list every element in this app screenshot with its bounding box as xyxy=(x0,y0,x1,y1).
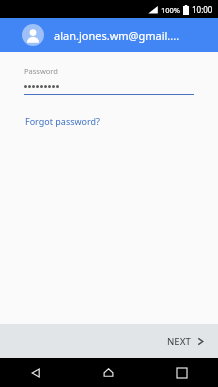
button[interactable]: alan.jones.wm@gmail.... xyxy=(22,24,208,46)
staticText: Password xyxy=(24,66,58,76)
staticText: 10:00 xyxy=(192,4,213,15)
staticText: Forgot password? xyxy=(25,115,101,127)
staticText: 100% xyxy=(161,5,181,15)
button[interactable]: Recent apps xyxy=(145,358,218,387)
staticText: alan.jones.wm@gmail.... xyxy=(54,28,180,43)
button[interactable]: Password xyxy=(24,66,194,95)
button[interactable]: NEXT xyxy=(153,328,218,355)
button[interactable]: Forgot password? xyxy=(24,113,102,129)
button[interactable]: Home xyxy=(72,358,145,387)
staticText: NEXT xyxy=(167,335,191,348)
button[interactable]: Back xyxy=(0,358,72,387)
